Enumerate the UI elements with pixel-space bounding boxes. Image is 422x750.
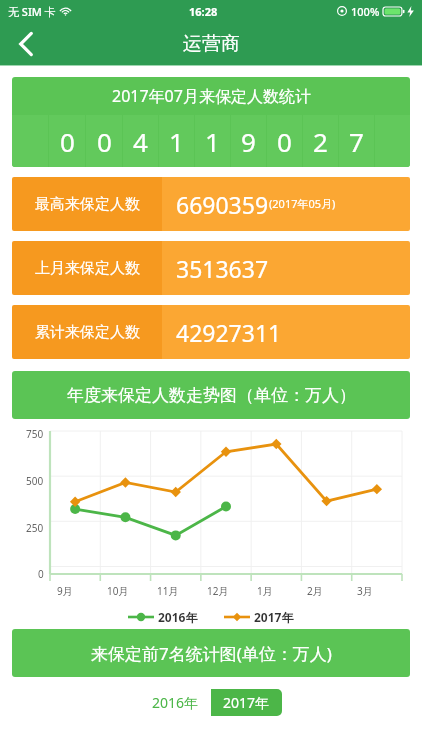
staticText: 1 (169, 124, 184, 159)
staticText: 2017年 (223, 693, 270, 712)
staticText: 2017年07月来保定人数统计 (112, 85, 311, 107)
staticText: 累计来保定人数 (35, 323, 140, 342)
staticText: 2017年 (254, 609, 294, 625)
staticText: 来保定前7名统计图(单位：万人) (91, 642, 332, 665)
staticText: 2 (313, 124, 328, 159)
staticText: 9 (241, 124, 256, 159)
button[interactable]: 最高来保定人数 (12, 177, 410, 231)
button[interactable]: 2017年 (224, 609, 294, 625)
staticText: 0 (97, 124, 112, 159)
staticText: 1 (205, 124, 220, 159)
staticText: 750 (26, 427, 44, 441)
button[interactable]: 返回 (0, 22, 52, 66)
staticText: 42927311 (176, 317, 282, 348)
staticText: 1月 (257, 584, 273, 598)
staticText: 0 (60, 124, 75, 159)
staticText: 9月 (57, 584, 73, 598)
staticText: 4 (133, 124, 148, 159)
staticText: 3513637 (176, 253, 269, 284)
staticText: 12月 (207, 584, 229, 598)
staticText: 运营商 (183, 32, 240, 56)
staticText: 2016年 (152, 693, 199, 712)
staticText: 6690359 (176, 189, 269, 220)
staticText: 3月 (357, 584, 373, 598)
staticText: 10月 (107, 584, 129, 598)
staticText: 11月 (157, 584, 179, 598)
staticText: 0 (38, 567, 44, 581)
button[interactable]: 2016年 (128, 609, 198, 625)
staticText: 100% (351, 4, 380, 19)
staticText: 500 (26, 474, 44, 488)
staticText: 无 SIM 卡 (8, 4, 56, 19)
button[interactable]: 上月来保定人数 (12, 241, 410, 295)
staticText: (2017年05月) (269, 196, 336, 211)
staticText: 最高来保定人数 (35, 195, 140, 214)
staticText: 2月 (307, 584, 323, 598)
staticText: 2016年 (158, 609, 198, 625)
staticText: 0 (277, 124, 292, 159)
button[interactable]: 2017年 (211, 689, 282, 716)
staticText: 年度来保定人数走势图（单位：万人） (67, 385, 356, 406)
staticText: 上月来保定人数 (35, 259, 140, 278)
staticText: 250 (26, 521, 44, 535)
staticText: 7 (349, 124, 364, 159)
staticText: 16:28 (189, 4, 218, 19)
button[interactable]: 累计来保定人数 (12, 305, 410, 359)
button[interactable]: 2016年 (140, 689, 211, 716)
